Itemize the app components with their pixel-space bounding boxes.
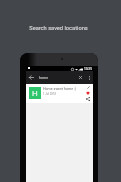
- staticText: H: [32, 89, 38, 98]
- button[interactable]: Back: [26, 71, 37, 84]
- staticText: 13:35: [84, 67, 92, 71]
- staticText: 1 Jul 2018: [43, 92, 57, 95]
- button[interactable]: Share: [85, 96, 91, 102]
- button[interactable]: Edit: [85, 84, 91, 90]
- staticText: Home sweet home :): [43, 87, 77, 91]
- button[interactable]: Favorite: [85, 90, 91, 96]
- button[interactable]: Clear: [76, 71, 85, 84]
- button[interactable]: More options: [85, 71, 93, 84]
- button[interactable]: H: [26, 84, 93, 103]
- staticText: Search saved locations: [0, 25, 119, 32]
- staticText: home: [39, 76, 49, 80]
